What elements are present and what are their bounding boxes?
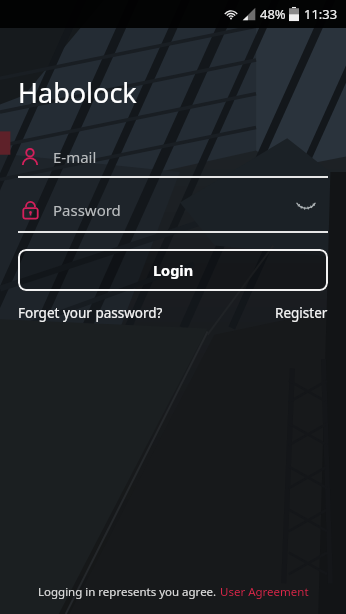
button[interactable] bbox=[292, 196, 320, 224]
staticText: E-mail bbox=[53, 147, 97, 167]
staticText: Logging in represents you agree. bbox=[38, 584, 220, 600]
button[interactable]: Password bbox=[18, 196, 328, 233]
staticText: 48% bbox=[260, 5, 286, 23]
button[interactable]: E-mail bbox=[18, 147, 328, 178]
button[interactable]: Login bbox=[18, 249, 328, 291]
staticText: User Agreement bbox=[220, 584, 309, 600]
staticText: Password bbox=[53, 200, 121, 220]
staticText: Login bbox=[153, 260, 194, 280]
staticText: Habolock bbox=[18, 74, 137, 111]
button[interactable]: Forget your password? bbox=[18, 304, 163, 322]
button[interactable]: Logging in represents you agree. bbox=[38, 584, 309, 600]
staticText: 11:33 bbox=[304, 5, 338, 23]
button[interactable]: Register bbox=[275, 304, 328, 322]
